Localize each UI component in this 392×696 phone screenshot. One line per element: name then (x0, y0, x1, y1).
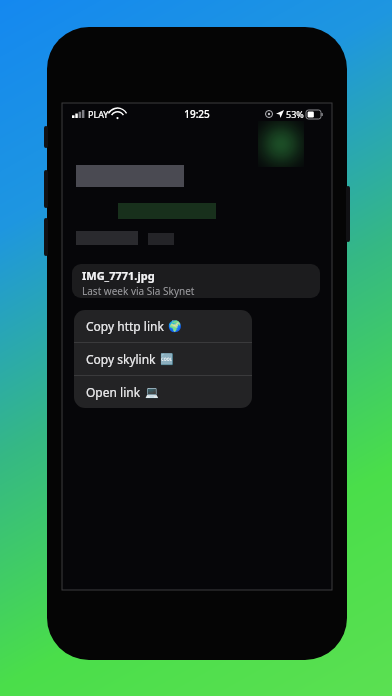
staticText: PLAY (88, 108, 109, 120)
staticText: 53% (286, 108, 304, 120)
staticText: 19:25 (184, 107, 210, 121)
staticText: 🌍 (168, 320, 182, 333)
staticText: Last week via Sia Skynet (82, 284, 195, 298)
button[interactable]: Copy http link (74, 310, 252, 342)
staticText: 💻 (145, 386, 159, 399)
staticText: Open link (86, 384, 141, 400)
staticText: Copy skylink (86, 351, 156, 367)
staticText: Copy http link (86, 318, 164, 334)
staticText: IMG_7771.jpg (82, 268, 155, 283)
button[interactable]: Copy skylink (74, 343, 252, 375)
button[interactable]: Open link (74, 376, 252, 408)
button[interactable]: IMG_7771.jpg (72, 264, 320, 298)
staticText: 🆒 (160, 353, 174, 366)
